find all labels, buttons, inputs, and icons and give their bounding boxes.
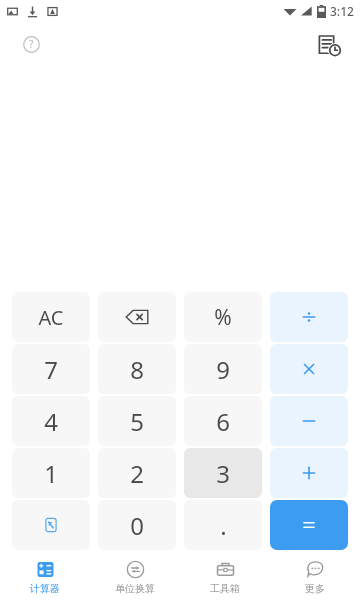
button[interactable]: Plus [270,448,348,498]
button[interactable]: Insert [12,500,90,550]
button[interactable]: 计算器 [0,554,90,600]
button[interactable]: 9 [184,344,262,394]
button[interactable]: 4 [12,396,90,446]
staticText: ? [29,37,34,51]
button[interactable]: Divide [270,292,348,342]
staticText: 8 [130,353,144,386]
button[interactable]: . [184,500,262,550]
button[interactable]: Multiply [270,344,348,394]
staticText: 1 [44,457,58,490]
button[interactable]: Minus [270,396,348,446]
staticText: 6 [216,405,230,438]
staticText: 5 [130,405,144,438]
staticText: 9 [216,353,230,386]
staticText: 单位换算 [115,582,155,595]
button[interactable]: 工具箱 [180,554,270,600]
staticText: 更多 [305,582,325,595]
staticText: 工具箱 [210,582,240,595]
button[interactable]: AC [12,292,90,342]
staticText: 4 [44,405,58,438]
button[interactable]: 3 [184,448,262,498]
button[interactable]: 6 [184,396,262,446]
button[interactable]: 2 [98,448,176,498]
staticText: 7 [44,353,58,386]
button[interactable]: Backspace [98,292,176,342]
staticText: 3:12 [330,3,354,19]
button[interactable]: 单位换算 [90,554,180,600]
button[interactable]: History [310,25,348,63]
button[interactable]: 7 [12,344,90,394]
staticText: AC [38,304,64,331]
button[interactable]: Help [14,27,48,61]
button[interactable]: 5 [98,396,176,446]
button[interactable]: 8 [98,344,176,394]
staticText: 2 [130,457,144,490]
staticText: 3 [216,457,230,490]
button[interactable]: 更多 [270,554,360,600]
staticText: 计算器 [30,582,60,595]
button[interactable]: Equals [270,500,348,550]
staticText: . [220,509,227,542]
staticText: 0 [130,509,144,542]
button[interactable]: % [184,292,262,342]
staticText: % [214,303,232,332]
button[interactable]: 1 [12,448,90,498]
button[interactable]: 0 [98,500,176,550]
